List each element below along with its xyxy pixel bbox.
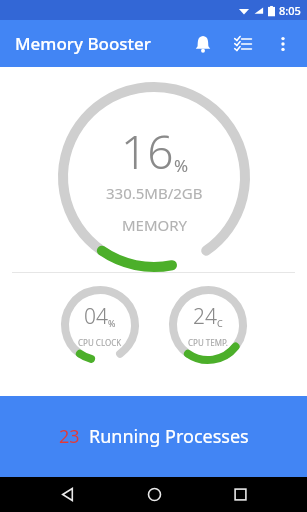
button[interactable]: Back	[47, 477, 87, 512]
staticText: CPU CLOCK	[78, 337, 122, 348]
button[interactable]: Recents	[220, 477, 260, 512]
button[interactable]: 04	[54, 279, 146, 371]
staticText: Memory Booster	[15, 32, 152, 55]
staticText: 04	[84, 302, 108, 331]
staticText: 23 Running Processes	[59, 424, 249, 449]
button[interactable]: Task list	[223, 24, 263, 64]
button[interactable]: 23 Running Processes	[0, 396, 307, 477]
button[interactable]: Notifications	[183, 24, 223, 64]
staticText: CPU TEMP.	[188, 337, 228, 348]
button[interactable]: More options	[263, 24, 303, 64]
staticText: 8:05	[279, 3, 301, 18]
button[interactable]: Home	[134, 477, 174, 512]
staticText: %	[108, 317, 116, 329]
button[interactable]: 24	[162, 279, 254, 371]
staticText: 16	[121, 120, 174, 183]
staticText: %	[174, 154, 189, 177]
staticText: 24	[193, 302, 217, 331]
staticText: C	[217, 317, 223, 329]
staticText: MEMORY	[122, 215, 188, 235]
staticText: 330.5MB/2GB	[106, 183, 203, 203]
